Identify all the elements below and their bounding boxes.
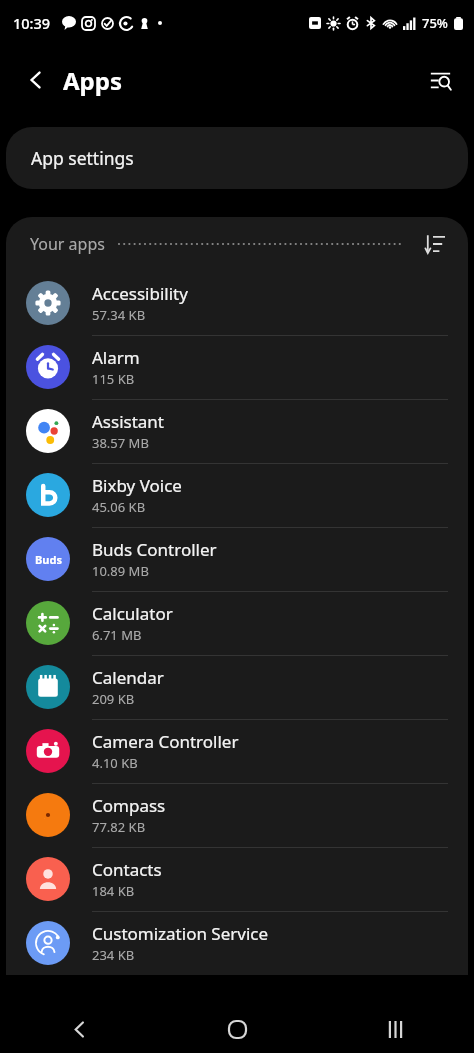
button[interactable]: Bixby Voice <box>6 463 468 527</box>
staticText: Calculator <box>92 602 173 625</box>
staticText: Buds Controller <box>92 538 217 561</box>
staticText: 115 KB <box>92 370 135 388</box>
button[interactable]: Accessibility <box>6 271 468 335</box>
staticText: 10.89 MB <box>92 562 149 580</box>
staticText: Assistant <box>92 410 164 433</box>
staticText: 57.34 KB <box>92 306 146 324</box>
staticText: Apps <box>63 64 122 97</box>
button[interactable]: Search <box>418 58 462 102</box>
staticText: 184 KB <box>92 882 135 900</box>
staticText: App settings <box>31 146 134 170</box>
staticText: Compass <box>92 794 166 817</box>
staticText: 75% <box>422 14 448 32</box>
button[interactable]: Recents <box>316 1005 474 1053</box>
staticText: 6.71 MB <box>92 626 142 644</box>
staticText: Your apps <box>30 233 105 255</box>
staticText: 209 KB <box>92 690 135 708</box>
staticText: 45.06 KB <box>92 498 146 516</box>
button[interactable]: Navigate up <box>14 58 58 102</box>
staticText: Buds <box>35 552 62 567</box>
button[interactable]: Contacts <box>6 847 468 911</box>
button[interactable]: Calculator <box>6 591 468 655</box>
staticText: 10:39 <box>13 13 51 33</box>
staticText: Accessibility <box>92 282 188 305</box>
staticText: Camera Controller <box>92 730 239 753</box>
staticText: 4.10 KB <box>92 754 138 772</box>
button[interactable]: App settings <box>6 127 468 189</box>
staticText: Alarm <box>92 346 140 369</box>
staticText: Contacts <box>92 858 162 881</box>
button[interactable]: Compass <box>6 783 468 847</box>
staticText: 234 KB <box>92 946 135 964</box>
staticText: Customization Service <box>92 922 269 945</box>
button[interactable]: Alarm <box>6 335 468 399</box>
button[interactable]: Camera Controller <box>6 719 468 783</box>
button[interactable]: Customization Service <box>6 911 468 975</box>
staticText: Bixby Voice <box>92 474 182 497</box>
button[interactable]: Sort <box>418 227 452 261</box>
button[interactable]: Back <box>0 1005 158 1053</box>
staticText: 38.57 MB <box>92 434 149 452</box>
button[interactable]: Home <box>158 1005 316 1053</box>
button[interactable]: Buds <box>6 527 468 591</box>
staticText: Calendar <box>92 666 164 689</box>
staticText: 77.82 KB <box>92 818 146 836</box>
button[interactable]: Calendar <box>6 655 468 719</box>
button[interactable]: Assistant <box>6 399 468 463</box>
